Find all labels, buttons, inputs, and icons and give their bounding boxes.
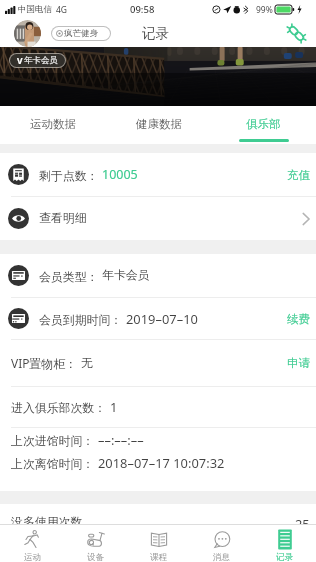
staticText: 申请 <box>287 356 310 370</box>
staticText: 会员类型： <box>39 268 102 284</box>
button[interactable]: Profile avatar <box>14 20 41 47</box>
button[interactable]: 上次进馆时间： <box>0 428 316 452</box>
button[interactable]: 课程 <box>127 525 190 562</box>
staticText: 记录 <box>142 25 169 42</box>
staticText: 1 <box>110 398 118 416</box>
staticText: 年卡会员 <box>24 55 58 66</box>
button[interactable]: 上次离馆时间： <box>0 452 316 473</box>
staticText: 09:58 <box>130 3 155 16</box>
staticText: 进入俱乐部次数： <box>11 399 110 415</box>
staticText: 续费 <box>287 312 310 326</box>
staticText: 运动数据 <box>30 117 76 131</box>
button[interactable]: 会员到期时间： <box>0 298 316 339</box>
button[interactable]: 消息 <box>190 525 253 562</box>
button[interactable]: 记录 <box>253 525 316 562</box>
staticText: 记录 <box>276 552 293 562</box>
staticText: 充值 <box>287 168 310 182</box>
staticText: 消息 <box>213 552 230 562</box>
staticText: 99% <box>256 4 273 16</box>
staticText: 健康数据 <box>136 117 182 131</box>
staticText: 上次离馆时间： <box>11 455 98 471</box>
staticText: VIP置物柜： <box>11 355 81 371</box>
button[interactable]: 运动数据 <box>0 106 106 144</box>
staticText: V <box>17 55 23 67</box>
staticText: 2019–07–10 <box>126 310 198 328</box>
staticText: 课程 <box>150 552 167 562</box>
button[interactable]: 剩于点数： <box>0 153 316 196</box>
staticText: 上次进馆时间： <box>11 432 98 448</box>
button[interactable]: 进入俱乐部次数： <box>0 387 316 427</box>
button[interactable]: 会员类型： <box>0 254 316 297</box>
staticText: 俱乐部 <box>246 117 281 131</box>
staticText: 查看明细 <box>39 211 87 226</box>
staticText: 设备 <box>87 552 104 562</box>
button[interactable]: 健康数据 <box>106 106 211 144</box>
button[interactable]: 没多使用次数 <box>0 504 316 524</box>
button[interactable]: 设备 <box>64 525 127 562</box>
staticText: 剩于点数： <box>39 167 102 183</box>
button[interactable]: V <box>10 54 65 67</box>
staticText: 25 <box>295 515 310 524</box>
staticText: 中国电信 <box>18 4 52 15</box>
staticText: 年卡会员 <box>102 268 150 283</box>
staticText: 疯芒健身 <box>64 28 98 39</box>
button[interactable]: VIP置物柜： <box>0 340 316 386</box>
staticText: 无 <box>81 356 93 371</box>
button[interactable]: Scan QR <box>284 21 308 45</box>
staticText: 2018–07–17 10:07:32 <box>98 454 225 472</box>
staticText: 没多使用次数 <box>11 515 83 524</box>
staticText: ––:––:–– <box>98 431 144 449</box>
staticText: 会员到期时间： <box>39 311 126 327</box>
staticText: 10005 <box>102 166 138 183</box>
button[interactable]: 俱乐部 <box>211 106 316 144</box>
button[interactable]: 疯芒健身 <box>52 27 110 40</box>
staticText: 运动 <box>24 552 41 562</box>
button[interactable]: 运动 <box>0 525 64 562</box>
button[interactable]: 查看明细 <box>0 197 316 240</box>
staticText: 4G <box>56 4 68 16</box>
